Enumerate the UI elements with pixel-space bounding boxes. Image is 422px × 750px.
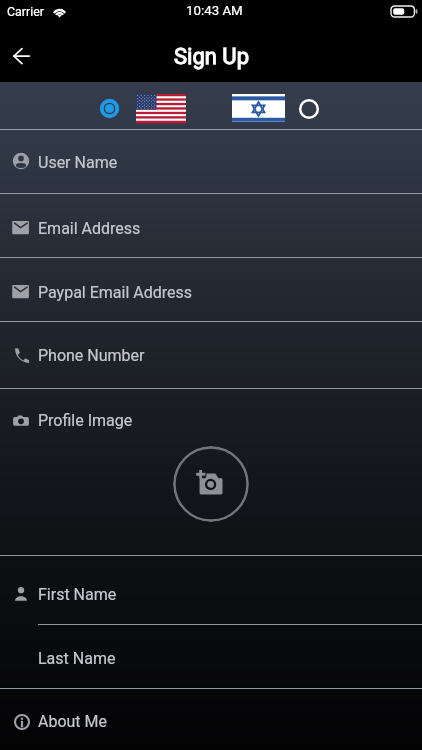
staticText: Email Address xyxy=(38,219,141,238)
staticText: Sign Up xyxy=(174,44,249,70)
button[interactable]: Back xyxy=(2,36,42,76)
staticText: User Name xyxy=(38,153,118,172)
button[interactable]: Add profile photo xyxy=(173,446,249,522)
staticText: First Name xyxy=(38,585,117,604)
button[interactable]: Email Address xyxy=(0,217,422,239)
button[interactable]: Israel flag xyxy=(232,94,285,122)
button[interactable]: Profile Image xyxy=(0,409,422,431)
button[interactable]: United States selected xyxy=(99,98,120,119)
staticText: Paypal Email Address xyxy=(38,283,193,302)
staticText: Last Name xyxy=(38,649,116,668)
staticText: 10:43 AM xyxy=(186,3,243,19)
staticText: Profile Image xyxy=(38,411,133,430)
button[interactable]: Paypal Email Address xyxy=(0,281,422,303)
button[interactable]: United States flag xyxy=(136,94,186,123)
button[interactable]: Phone Number xyxy=(0,344,422,366)
button[interactable]: Israel xyxy=(298,98,320,120)
button[interactable]: First Name xyxy=(0,583,422,605)
button[interactable]: User Name xyxy=(0,151,422,173)
button[interactable]: Last Name xyxy=(0,647,422,669)
staticText: Carrier xyxy=(7,4,44,19)
staticText: Phone Number xyxy=(38,346,145,365)
staticText: About Me xyxy=(38,712,108,731)
button[interactable]: About Me xyxy=(0,710,422,732)
